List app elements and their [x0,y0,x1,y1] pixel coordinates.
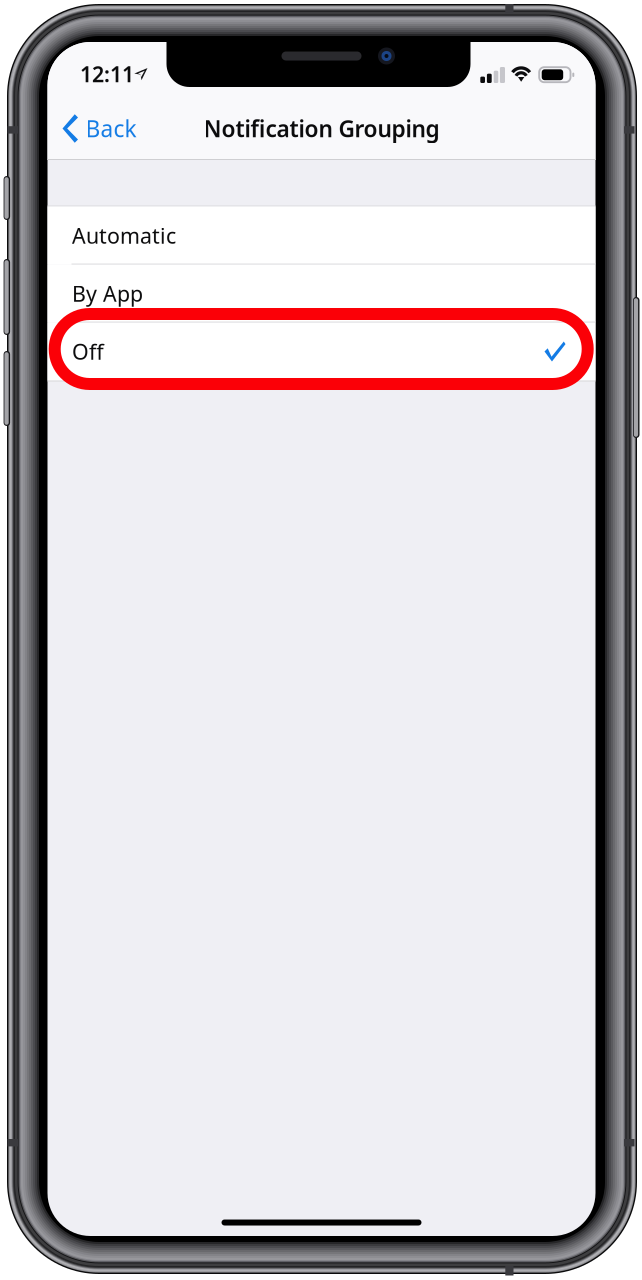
staticText: Automatic [72,221,176,250]
button[interactable]: Automatic [47,206,595,264]
button[interactable]: Back [47,97,207,160]
staticText: By App [72,279,143,308]
staticText: Back [85,113,136,143]
button[interactable]: Off [47,322,595,380]
staticText: 12:11 [80,60,134,88]
staticText: Off [72,337,104,366]
staticText: Notification Grouping [203,113,439,143]
button[interactable]: By App [47,264,595,322]
